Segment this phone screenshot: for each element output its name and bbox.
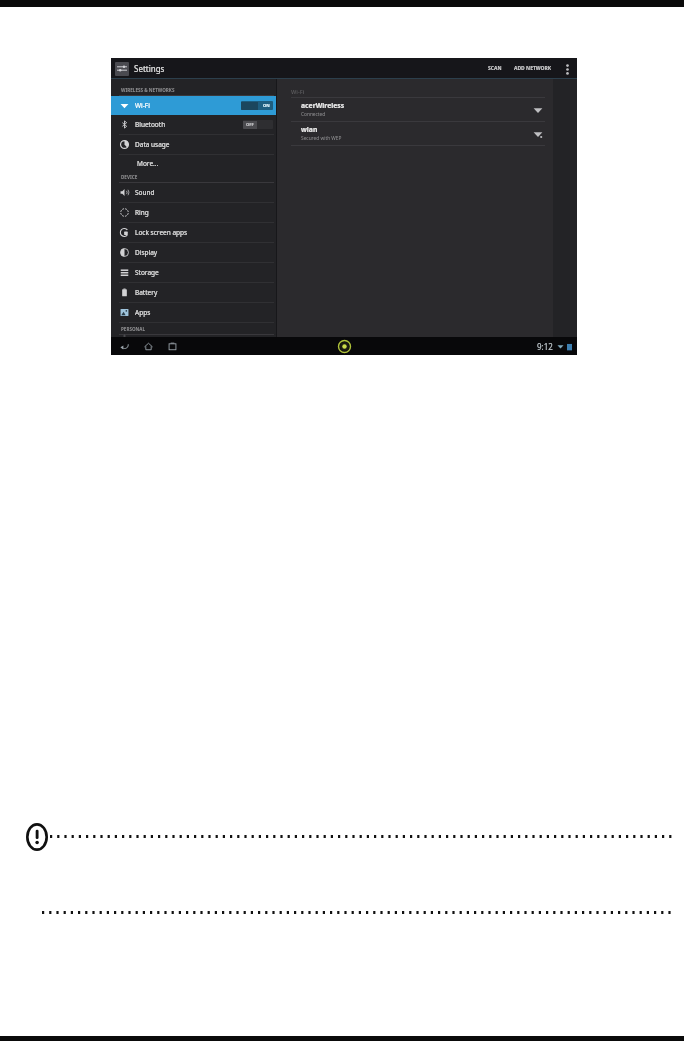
button[interactable]: More... [111, 155, 277, 171]
button[interactable]: Settings app icon [115, 62, 129, 76]
button[interactable]: Status: 9:12, Wi-Fi connected, battery [537, 341, 572, 352]
button[interactable]: Bluetooth off [243, 120, 273, 129]
staticText: More... [137, 159, 159, 168]
button[interactable]: Apps [111, 303, 277, 322]
button[interactable]: Recent apps [165, 339, 179, 353]
button[interactable]: SCAN [484, 62, 506, 75]
staticText: Bluetooth [135, 120, 166, 129]
staticText: Data usage [135, 140, 170, 149]
staticText: Wi-Fi [291, 88, 305, 95]
staticText: Secured with WEP [301, 135, 342, 142]
button[interactable]: Sound [111, 183, 277, 202]
staticText: ADD NETWORK [514, 65, 552, 72]
button[interactable]: Network signal [533, 105, 543, 115]
staticText: Connected [301, 111, 326, 118]
button[interactable]: More options [562, 60, 572, 78]
staticText: Wi-Fi [135, 101, 150, 110]
staticText: acerWireless [301, 101, 345, 110]
staticText: ON [263, 103, 270, 109]
staticText: PERSONAL [121, 326, 146, 332]
staticText: Lock screen apps [135, 228, 188, 237]
button[interactable]: Lock screen apps [111, 223, 277, 242]
button[interactable]: Back [117, 339, 131, 353]
staticText: Apps [135, 308, 151, 317]
staticText: Sound [135, 188, 155, 197]
staticText: wlan [301, 125, 318, 134]
button[interactable]: Bluetooth [111, 115, 277, 134]
button[interactable]: acerWireless [277, 98, 577, 121]
button[interactable]: ADD NETWORK [510, 62, 556, 75]
button[interactable]: Battery [111, 283, 277, 302]
button[interactable]: Screenshot [338, 340, 351, 353]
button[interactable]: Display [111, 243, 277, 262]
button[interactable]: Secured network signal [533, 129, 543, 139]
staticText: Battery [135, 288, 158, 297]
button[interactable]: Data usage [111, 135, 277, 154]
staticText: Display [135, 248, 158, 257]
staticText: OFF [246, 122, 254, 128]
button[interactable]: Storage [111, 263, 277, 282]
staticText: 9:12 [537, 341, 553, 352]
staticText: Settings [134, 63, 165, 74]
button[interactable]: Accounts & sync [111, 335, 277, 337]
staticText: SCAN [488, 65, 502, 72]
button[interactable]: Wi-Fi [111, 96, 277, 115]
staticText: WIRELESS & NETWORKS [121, 87, 175, 93]
button[interactable]: wlan [277, 122, 577, 145]
staticText: Ring [135, 208, 149, 217]
staticText: Storage [135, 268, 159, 277]
button[interactable]: Wi-Fi on [241, 101, 273, 110]
button[interactable]: Home [141, 339, 155, 353]
staticText: DEVICE [121, 174, 138, 180]
button[interactable]: Ring [111, 203, 277, 222]
